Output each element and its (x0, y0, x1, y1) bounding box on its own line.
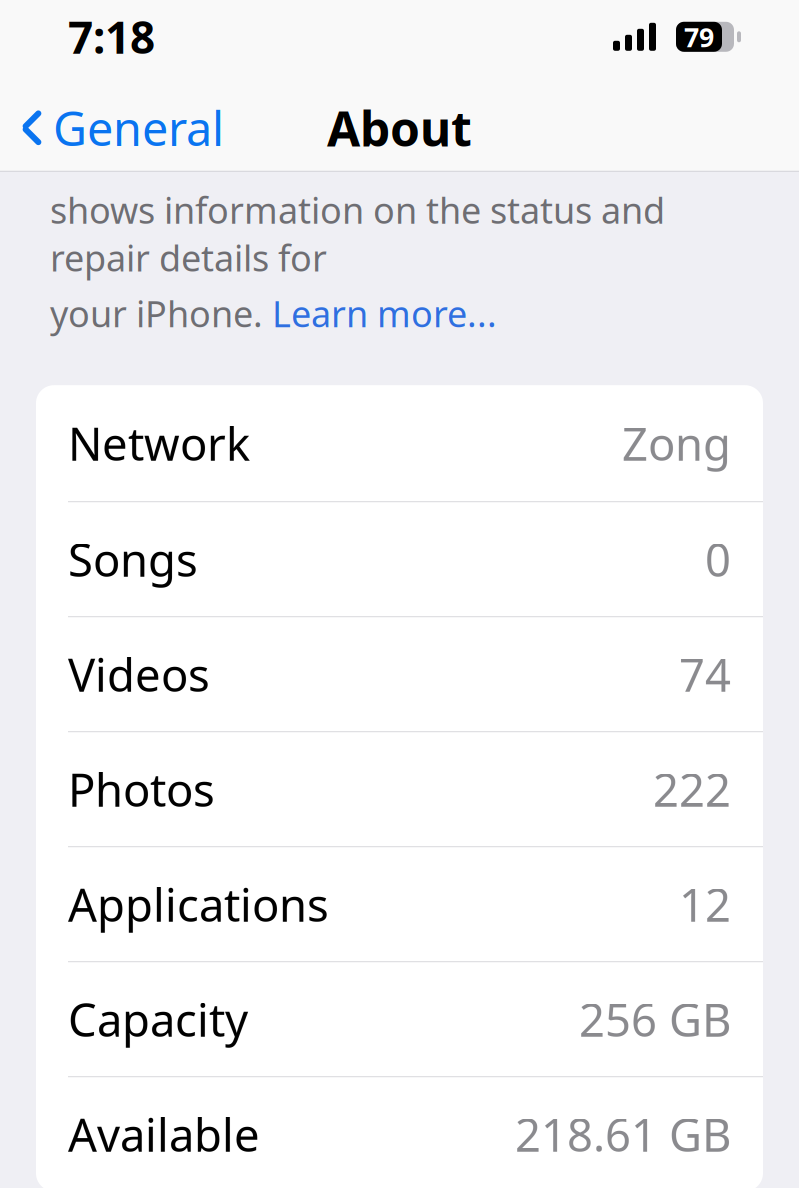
staticText: Available (68, 1104, 260, 1164)
staticText: Songs (68, 529, 198, 589)
button[interactable]: Videos (36, 617, 763, 731)
button[interactable]: Songs (36, 502, 763, 616)
staticText: About (327, 96, 472, 160)
staticText: Photos (68, 759, 215, 819)
staticText: 218.61 GB (515, 1104, 731, 1164)
button[interactable]: Photos (36, 732, 763, 846)
staticText: 222 (653, 759, 731, 819)
button[interactable]: Learn more... (272, 289, 497, 337)
staticText: your iPhone. (50, 289, 272, 337)
staticText: 7:18 (68, 8, 155, 66)
staticText: Learn more... (272, 289, 497, 337)
staticText: shows information on the status and repa… (50, 186, 665, 281)
staticText: 79 (684, 19, 714, 54)
staticText: General (53, 97, 224, 159)
button[interactable]: General (0, 87, 238, 169)
staticText: 12 (679, 874, 731, 934)
staticText: 0 (705, 529, 731, 589)
staticText: Capacity (68, 989, 248, 1049)
staticText: 74 (679, 644, 731, 704)
staticText: Network (68, 413, 250, 473)
staticText: Videos (68, 644, 210, 704)
button[interactable]: Network (36, 385, 763, 501)
button[interactable]: Capacity (36, 962, 763, 1076)
staticText: 256 GB (579, 989, 731, 1049)
button[interactable]: Available (36, 1077, 763, 1188)
button[interactable]: Applications (36, 847, 763, 961)
staticText: Applications (68, 874, 329, 934)
staticText: Zong (622, 413, 731, 473)
